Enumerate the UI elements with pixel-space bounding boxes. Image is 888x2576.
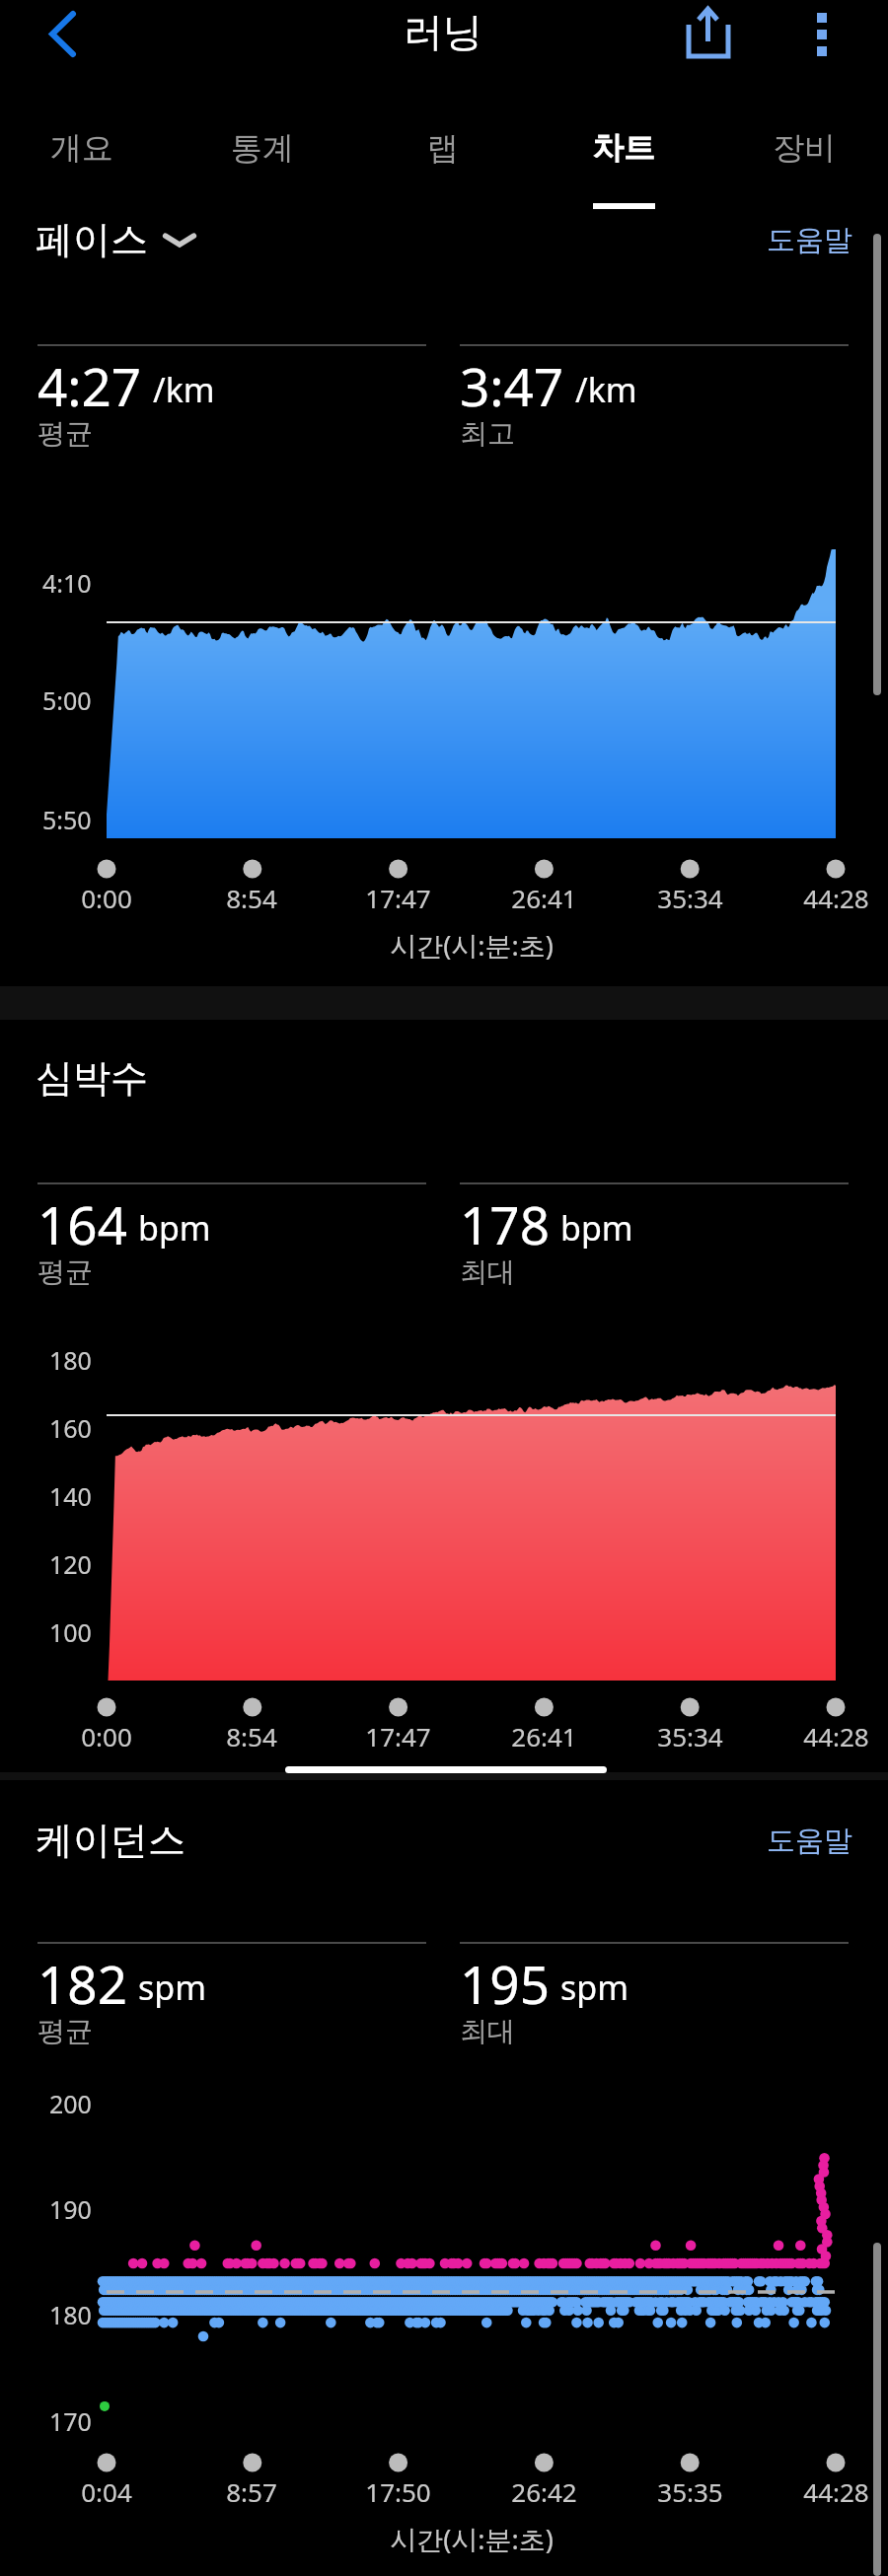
staticText: 도움말: [767, 1823, 852, 1859]
staticText: 200: [49, 2087, 92, 2120]
staticText: 5:50: [42, 803, 92, 836]
staticText: 164: [37, 1188, 127, 1253]
staticText: 0:04: [81, 2474, 132, 2509]
staticText: 0:00: [81, 1719, 132, 1753]
staticText: 4:10: [42, 566, 92, 600]
staticText: 8:54: [226, 881, 277, 915]
staticText: 26:41: [511, 881, 577, 915]
staticText: 44:28: [803, 2474, 869, 2509]
staticText: 100: [49, 1615, 92, 1649]
staticText: 178: [460, 1188, 550, 1253]
staticText: 180: [49, 1343, 92, 1377]
staticText: 8:57: [226, 2474, 277, 2509]
staticText: 심박수: [36, 1054, 148, 1102]
staticText: 160: [49, 1411, 92, 1445]
staticText: /km: [575, 367, 637, 412]
staticText: 17:47: [365, 881, 431, 915]
staticText: bpm: [560, 1205, 633, 1251]
staticText: 평균: [37, 1254, 93, 1289]
staticText: /km: [153, 367, 215, 412]
staticText: bpm: [138, 1205, 211, 1251]
staticText: 195: [460, 1948, 550, 2013]
staticText: 35:35: [657, 2474, 723, 2509]
button[interactable]: 통계: [172, 103, 352, 197]
staticText: 개요: [50, 128, 113, 168]
staticText: 8:54: [226, 1719, 277, 1753]
staticText: 44:28: [803, 881, 869, 915]
staticText: 4:27: [37, 350, 142, 415]
staticText: 러닝: [404, 7, 482, 56]
button[interactable]: 차트: [533, 103, 713, 197]
staticText: 26:41: [511, 1719, 577, 1753]
staticText: 0:00: [81, 881, 132, 915]
button[interactable]: 랩: [352, 103, 533, 197]
button[interactable]: 장비: [713, 103, 888, 197]
staticText: 44:28: [803, 1719, 869, 1753]
staticText: 최고: [460, 416, 515, 451]
staticText: 26:42: [511, 2474, 577, 2509]
staticText: 최대: [460, 2014, 515, 2048]
staticText: 182: [37, 1948, 127, 2013]
staticText: 차트: [592, 128, 655, 168]
staticText: 5:00: [42, 683, 92, 717]
staticText: 17:50: [365, 2474, 431, 2509]
staticText: 120: [49, 1547, 92, 1581]
button[interactable]: 심박수: [36, 1045, 148, 1110]
staticText: spm: [560, 1965, 629, 2010]
staticText: 케이던스: [36, 1817, 185, 1864]
staticText: 140: [49, 1479, 92, 1513]
button[interactable]: 도움말: [742, 1808, 852, 1873]
staticText: 최대: [460, 1254, 515, 1289]
staticText: 35:34: [657, 1719, 723, 1753]
button[interactable]: 페이스: [36, 207, 195, 272]
staticText: 장비: [773, 128, 836, 168]
staticText: spm: [138, 1965, 206, 2010]
staticText: 페이스: [36, 216, 148, 263]
staticText: 190: [49, 2192, 92, 2226]
staticText: 랩: [427, 128, 459, 168]
staticText: 평균: [37, 2014, 93, 2048]
staticText: 도움말: [767, 222, 852, 258]
staticText: 시간(시:분:초): [390, 2521, 554, 2557]
staticText: 17:47: [365, 1719, 431, 1753]
button[interactable]: 개요: [0, 103, 172, 197]
button[interactable]: 도움말: [742, 207, 852, 272]
button[interactable]: Share: [674, 0, 741, 67]
staticText: 170: [49, 2404, 92, 2438]
staticText: 시간(시:분:초): [390, 927, 554, 964]
staticText: 평균: [37, 416, 93, 451]
staticText: 통계: [231, 128, 294, 168]
staticText: 180: [49, 2298, 92, 2331]
button[interactable]: 케이던스: [36, 1808, 185, 1873]
button[interactable]: More options: [787, 0, 852, 65]
staticText: 35:34: [657, 881, 723, 915]
staticText: 3:47: [460, 350, 564, 415]
button[interactable]: Back: [22, 0, 91, 69]
